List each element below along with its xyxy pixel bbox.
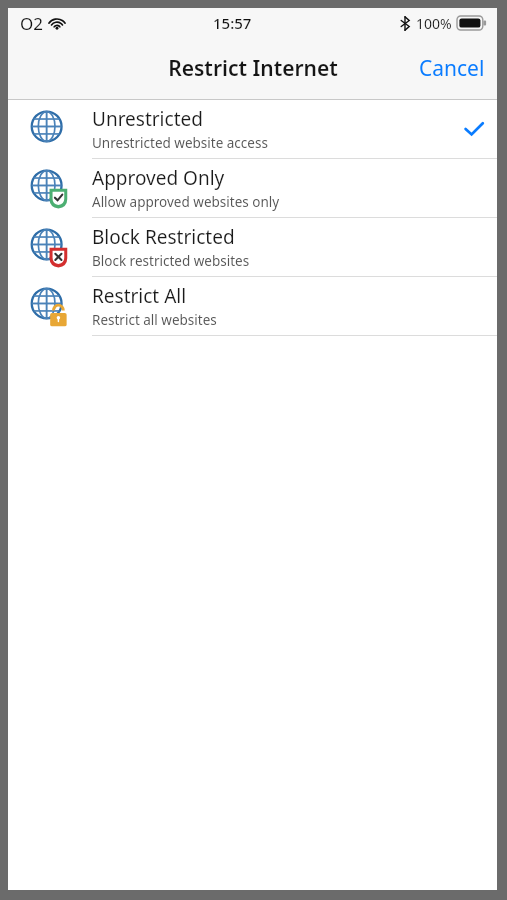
staticText: Block restricted websites: [92, 252, 250, 270]
staticText: Allow approved websites only: [92, 193, 280, 211]
button[interactable]: Block Restricted: [8, 218, 497, 276]
button[interactable]: Approved Only: [8, 159, 497, 217]
staticText: Block Restricted: [92, 224, 235, 250]
staticText: 100%: [416, 14, 452, 33]
button[interactable]: Cancel: [407, 46, 497, 91]
staticText: Approved Only: [92, 165, 225, 191]
button[interactable]: Restrict All: [8, 277, 497, 335]
button[interactable]: Unrestricted: [8, 100, 497, 158]
staticText: Restrict all websites: [92, 311, 217, 329]
staticText: Cancel: [419, 54, 485, 83]
staticText: Restrict Internet: [168, 54, 338, 83]
staticText: Unrestricted website access: [92, 134, 268, 152]
staticText: Restrict All: [92, 283, 187, 309]
staticText: O2: [20, 12, 44, 35]
staticText: 15:57: [213, 13, 252, 33]
staticText: Unrestricted: [92, 106, 203, 132]
